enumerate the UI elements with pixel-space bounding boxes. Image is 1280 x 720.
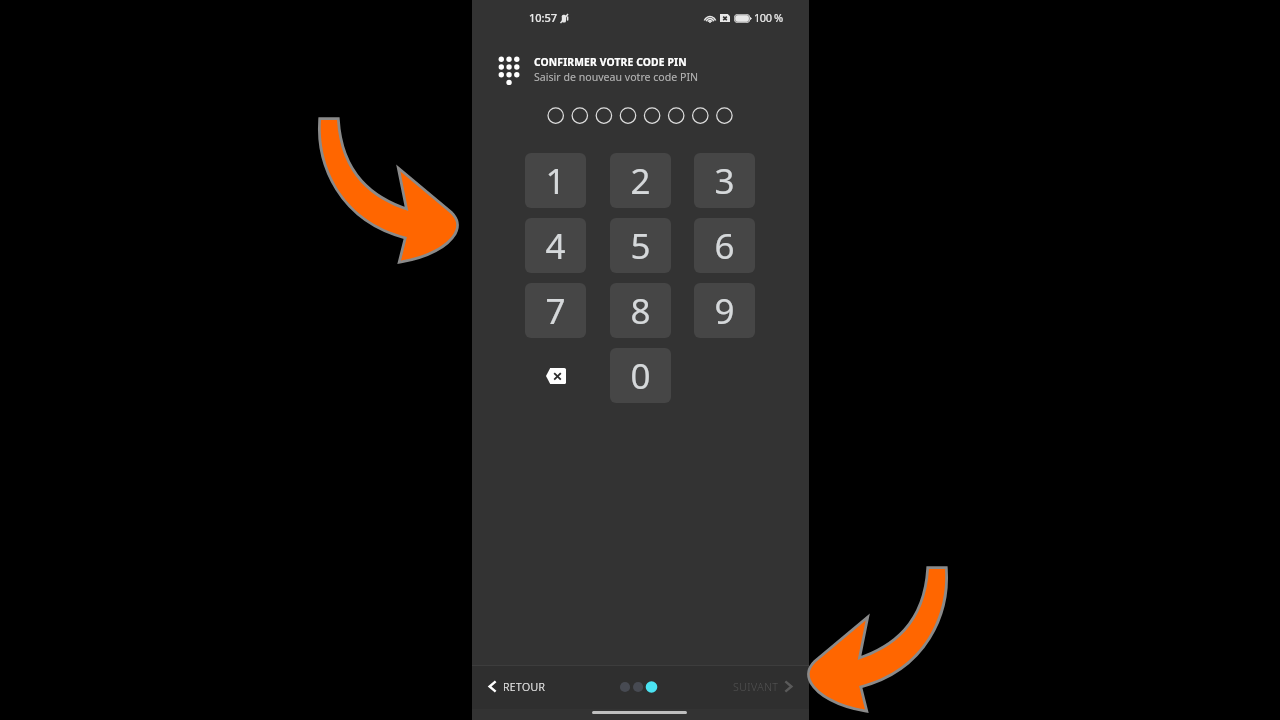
button[interactable]: 1: [525, 153, 586, 208]
staticText: 10:57: [529, 10, 558, 25]
staticText: Saisir de nouveau votre code PIN: [534, 70, 699, 84]
button[interactable]: 7: [525, 283, 586, 338]
button[interactable]: Effacer: [525, 348, 586, 403]
button[interactable]: 4: [525, 218, 586, 273]
staticText: 100 %: [754, 10, 783, 25]
staticText: 5: [630, 222, 651, 270]
button[interactable]: 9: [694, 283, 755, 338]
button[interactable]: 8: [610, 283, 671, 338]
button[interactable]: 0: [610, 348, 671, 403]
button[interactable]: 3: [694, 153, 755, 208]
staticText: 0: [630, 352, 651, 400]
staticText: 9: [714, 287, 735, 335]
button[interactable]: SUIVANT: [733, 673, 792, 700]
staticText: 6: [714, 222, 735, 270]
staticText: 8: [630, 287, 651, 335]
staticText: 1: [545, 157, 566, 205]
button[interactable]: RETOUR: [489, 673, 546, 700]
staticText: CONFIRMER VOTRE CODE PIN: [534, 55, 687, 69]
button[interactable]: 2: [610, 153, 671, 208]
staticText: 7: [545, 287, 566, 335]
staticText: 3: [714, 157, 735, 205]
staticText: 4: [545, 222, 566, 270]
staticText: 2: [630, 157, 651, 205]
staticText: RETOUR: [503, 680, 546, 694]
button[interactable]: 5: [610, 218, 671, 273]
button[interactable]: 6: [694, 218, 755, 273]
staticText: SUIVANT: [733, 680, 779, 694]
